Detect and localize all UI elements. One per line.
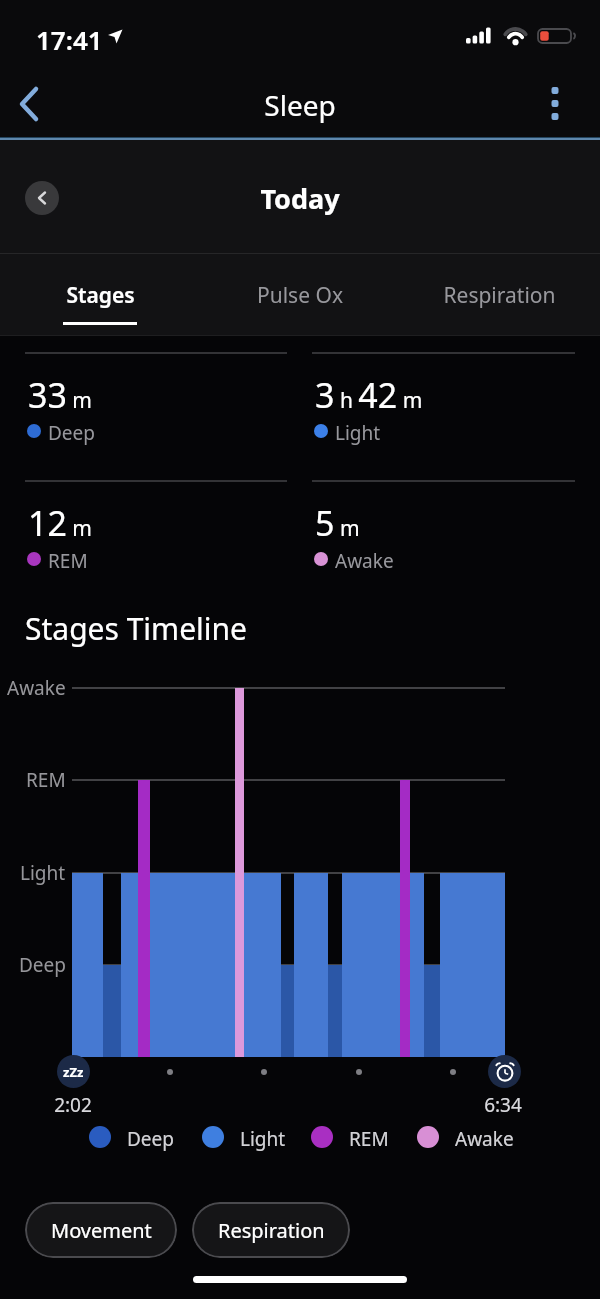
staticText: Deep <box>127 1126 174 1152</box>
staticText: 3 h 42 m <box>315 372 423 418</box>
button[interactable] <box>25 181 59 215</box>
staticText: 17:41 <box>36 22 103 57</box>
staticText: Light <box>335 420 381 446</box>
staticText: Sleep <box>264 86 336 124</box>
staticText: REM <box>48 548 88 574</box>
button[interactable]: Pulse Ox <box>240 276 360 314</box>
staticText: zZz <box>63 1063 84 1081</box>
staticText: REM <box>349 1126 389 1152</box>
button[interactable]: Movement <box>25 1202 177 1258</box>
staticText: Light <box>240 1126 286 1152</box>
staticText: Light <box>20 860 66 886</box>
staticText: REM <box>26 767 66 793</box>
staticText: Awake <box>7 675 66 701</box>
staticText: Awake <box>455 1126 514 1152</box>
staticText: Movement <box>51 1217 152 1244</box>
staticText: Stages Timeline <box>25 608 247 649</box>
staticText: Stages <box>66 281 135 310</box>
staticText: 2:02 <box>54 1092 92 1116</box>
staticText: 5 m <box>315 500 360 546</box>
button[interactable] <box>533 82 577 126</box>
button[interactable]: Respiration <box>424 276 574 314</box>
staticText: Deep <box>48 420 95 446</box>
button[interactable]: Respiration <box>192 1202 350 1258</box>
button[interactable]: Stages <box>40 276 160 314</box>
staticText: Awake <box>335 548 394 574</box>
staticText: Respiration <box>218 1217 325 1244</box>
staticText: Respiration <box>443 281 556 310</box>
staticText: 33 m <box>28 372 92 418</box>
staticText: 6:34 <box>484 1092 522 1116</box>
staticText: Pulse Ox <box>257 281 343 310</box>
staticText: Deep <box>19 952 66 978</box>
staticText: Today <box>260 180 340 217</box>
staticText: 12 m <box>28 500 92 546</box>
button[interactable] <box>8 82 52 126</box>
